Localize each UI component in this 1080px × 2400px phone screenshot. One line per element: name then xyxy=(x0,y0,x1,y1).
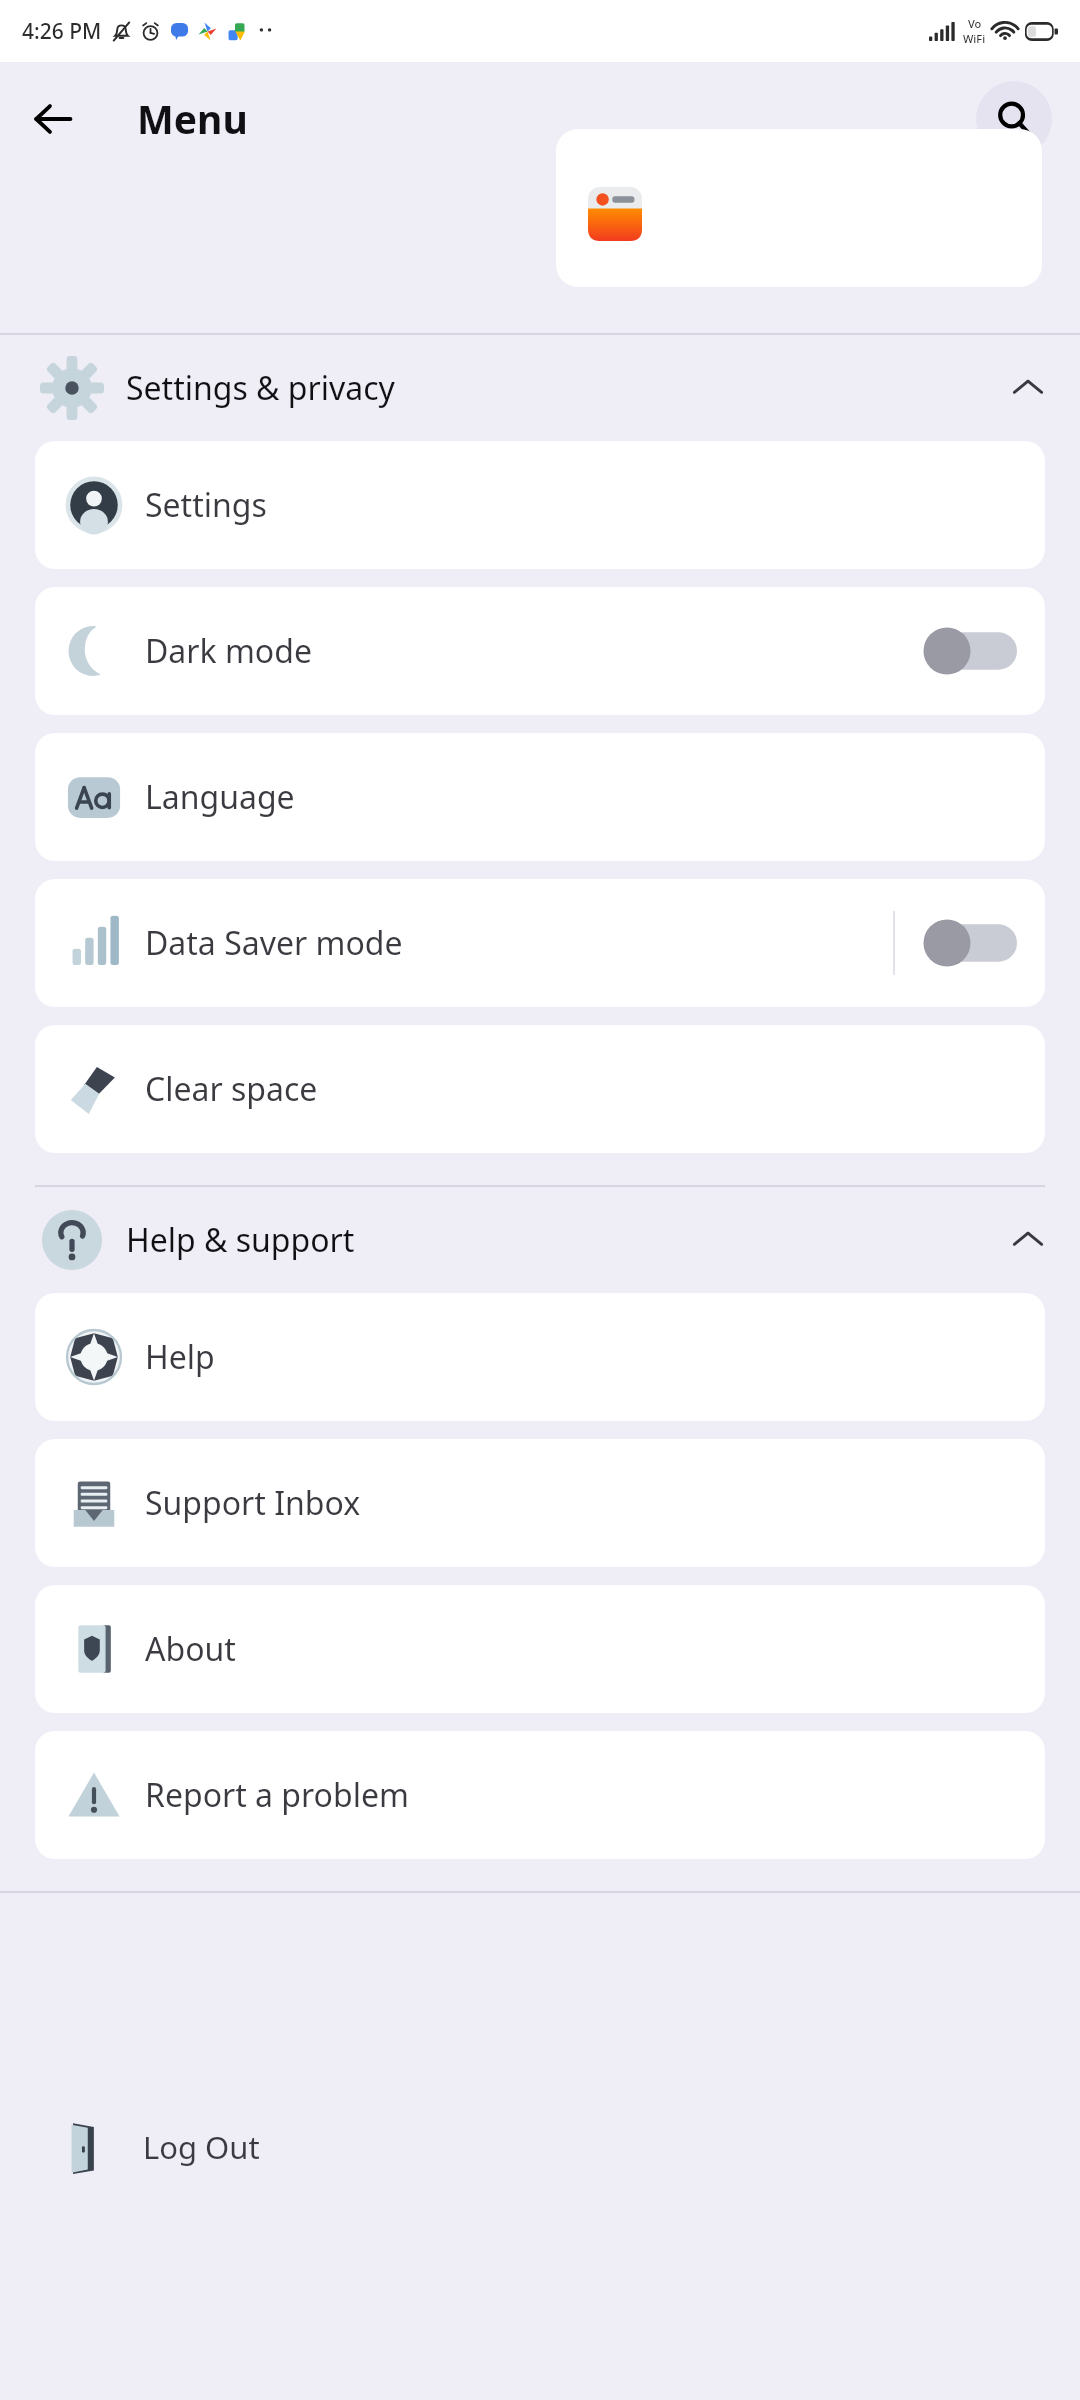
button[interactable]: Log Out xyxy=(0,1893,1080,2400)
staticText: Dark mode xyxy=(145,629,312,673)
button[interactable]: Data Saver mode xyxy=(35,879,1045,1007)
staticText: WiFi xyxy=(963,31,986,46)
staticText: Data Saver mode xyxy=(145,921,403,965)
button[interactable]: Support Inbox xyxy=(35,1439,1045,1567)
button[interactable]: Data Saver mode toggle xyxy=(923,919,1017,967)
button[interactable]: Back xyxy=(20,86,86,152)
button[interactable]: Clear space xyxy=(35,1025,1045,1153)
staticText: Language xyxy=(145,775,295,819)
staticText: About xyxy=(145,1627,236,1671)
staticText: Clear space xyxy=(145,1067,318,1111)
button[interactable]: Feeds xyxy=(556,129,1042,287)
button[interactable]: Language xyxy=(35,733,1045,861)
staticText: Report a problem xyxy=(145,1773,409,1817)
button[interactable]: Report a problem xyxy=(35,1731,1045,1859)
button[interactable]: Settings xyxy=(35,441,1045,569)
button[interactable]: Settings & privacy xyxy=(0,335,1080,441)
staticText: Settings xyxy=(145,483,267,527)
button[interactable]: Help xyxy=(35,1293,1045,1421)
staticText: Log Out xyxy=(143,2126,260,2168)
button[interactable]: Dark mode xyxy=(35,587,1045,715)
button[interactable]: Search xyxy=(976,81,1052,157)
staticText: Help xyxy=(145,1335,215,1379)
staticText: Help & support xyxy=(126,1218,355,1262)
button[interactable]: About xyxy=(35,1585,1045,1713)
button[interactable]: Help & support xyxy=(0,1187,1080,1293)
staticText: Settings & privacy xyxy=(126,366,395,410)
staticText: Vo xyxy=(968,16,982,31)
button[interactable]: Dark mode toggle xyxy=(923,627,1017,675)
staticText: Support Inbox xyxy=(145,1481,361,1525)
staticText: Menu xyxy=(137,92,248,145)
staticText: 4:26 PM xyxy=(22,17,102,46)
